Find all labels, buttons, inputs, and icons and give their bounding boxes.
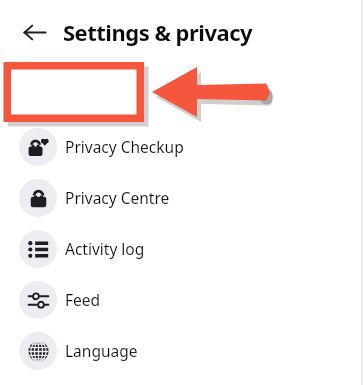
button[interactable]: Language [0,325,363,376]
button[interactable]: Settings [0,70,363,121]
button[interactable]: Feed [0,274,363,325]
staticText: Language [65,340,138,361]
staticText: Privacy Centre [65,187,170,208]
button[interactable]: Privacy Checkup [0,121,363,172]
staticText: Feed [65,289,101,310]
button[interactable]: Privacy Centre [0,172,363,223]
button[interactable]: Activity log [0,223,363,274]
staticText: Activity log [65,238,145,259]
staticText: Privacy Checkup [65,136,184,157]
staticText: Settings & privacy [63,17,253,47]
button[interactable]: Back [17,15,51,49]
